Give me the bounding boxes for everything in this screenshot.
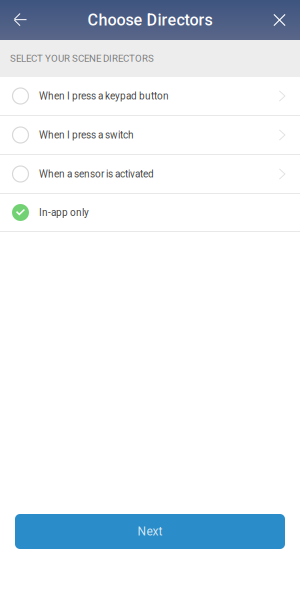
staticText: Choose Directors (87, 10, 212, 29)
button[interactable]: When I press a keypad button (0, 77, 300, 115)
staticText: Next (137, 524, 162, 539)
staticText: When I press a keypad button (39, 90, 169, 102)
button[interactable]: Back (0, 0, 41, 40)
button[interactable]: When a sensor is activated (0, 155, 300, 193)
button[interactable]: In-app only (0, 194, 300, 231)
staticText: In-app only (39, 207, 89, 218)
button[interactable]: Next (15, 514, 285, 549)
button[interactable]: When I press a switch (0, 116, 300, 154)
button[interactable]: Close (259, 0, 300, 40)
staticText: When I press a switch (39, 129, 134, 141)
staticText: SELECT YOUR SCENE DIRECTORS (10, 53, 154, 64)
staticText: When a sensor is activated (39, 168, 154, 180)
